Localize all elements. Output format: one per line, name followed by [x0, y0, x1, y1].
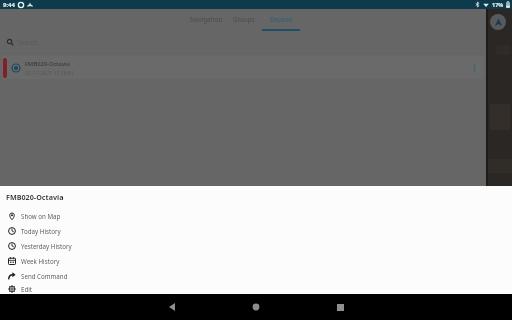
button[interactable]: Navigation: [186, 9, 226, 31]
button[interactable]: Devices: [262, 9, 300, 31]
staticText: Search: [17, 38, 38, 47]
staticText: Week History: [21, 257, 60, 265]
staticText: Groups: [233, 15, 255, 23]
staticText: Edit: [21, 285, 33, 293]
button[interactable]: Show on Map: [0, 208, 512, 223]
button[interactable]: [490, 14, 506, 30]
button[interactable]: [159, 294, 185, 320]
staticText: 17%: [492, 1, 504, 8]
button[interactable]: FMB020-Octavia: [2, 56, 484, 79]
staticText: Devices: [270, 15, 293, 23]
staticText: 9:44: [3, 1, 15, 9]
staticText: Yesterday History: [21, 242, 72, 250]
button[interactable]: Week History: [0, 253, 512, 268]
staticText: Show on Map: [21, 212, 61, 220]
button[interactable]: Groups: [229, 9, 259, 31]
button[interactable]: [327, 294, 353, 320]
button[interactable]: Yesterday History: [0, 238, 512, 253]
button[interactable]: [467, 61, 481, 75]
staticText: FMB020-Octavia: [6, 192, 64, 202]
button[interactable]: [243, 294, 269, 320]
button[interactable]: Edit: [0, 283, 512, 294]
button[interactable]: Send Command: [0, 268, 512, 283]
staticText: 02-11-2021 17:16:51: [25, 69, 75, 76]
staticText: Today History: [21, 227, 61, 235]
staticText: Send Command: [21, 272, 68, 280]
staticText: Navigation: [190, 15, 223, 23]
button[interactable]: Today History: [0, 223, 512, 238]
staticText: FMB020-Octavia: [25, 60, 70, 68]
